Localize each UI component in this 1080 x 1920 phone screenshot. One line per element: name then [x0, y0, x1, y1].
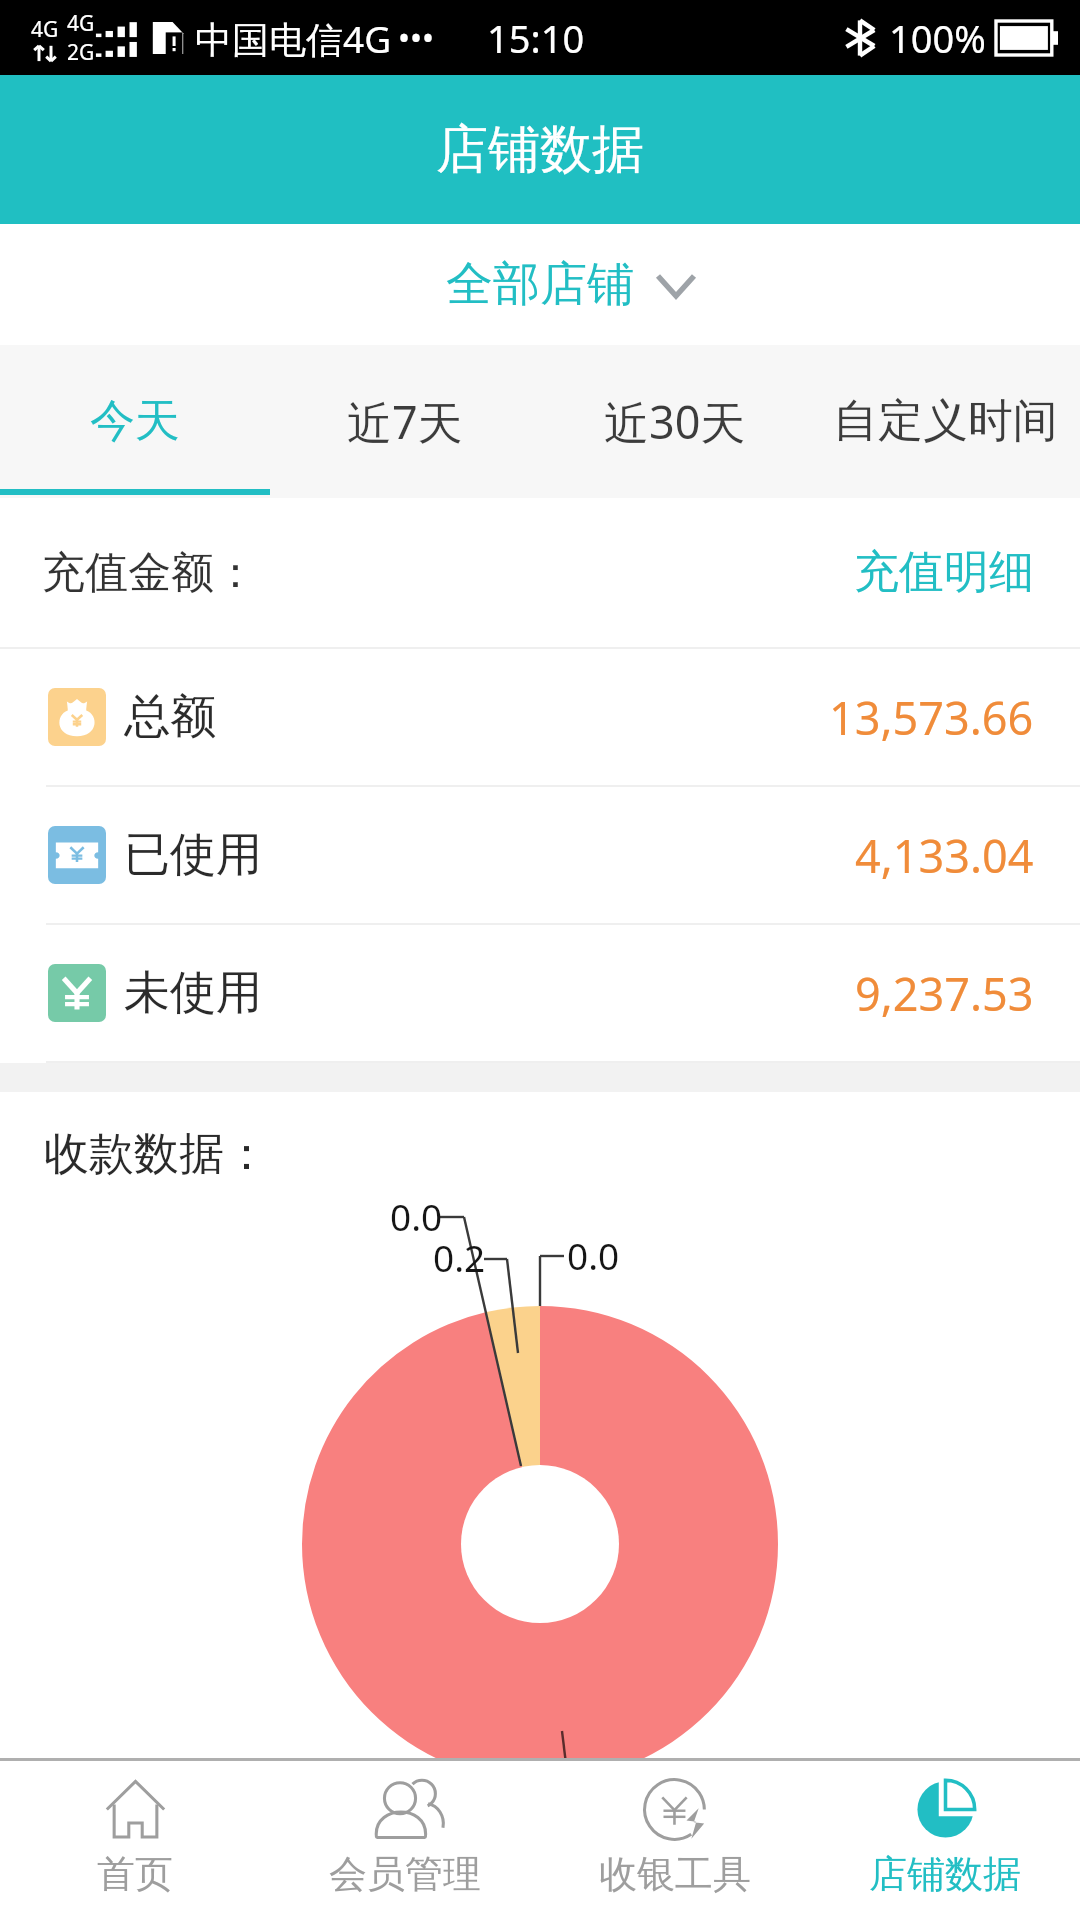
button[interactable]: 近7天 — [270, 345, 540, 498]
staticText: 充值明细 — [854, 544, 1034, 601]
staticText: 已使用 — [124, 826, 262, 884]
button[interactable]: 店铺数据 — [810, 1761, 1080, 1920]
staticText: 收银工具 — [599, 1850, 751, 1898]
staticText: 总额 — [124, 688, 216, 746]
staticText: 0.2 — [433, 1232, 486, 1282]
button[interactable]: 首页 — [0, 1761, 270, 1920]
button[interactable]: 自定义时间 — [810, 345, 1080, 498]
button[interactable]: 充值明细 — [808, 544, 1080, 601]
staticText: 充值金额： — [42, 546, 257, 600]
staticText: 中国电信4G — [195, 13, 392, 64]
staticText: 未使用 — [124, 964, 262, 1022]
staticText: 会员管理 — [329, 1850, 481, 1898]
staticText: 近30天 — [604, 391, 746, 452]
staticText: 全部店铺 — [446, 255, 634, 314]
button[interactable]: 会员管理 — [270, 1761, 540, 1920]
button[interactable]: 近30天 — [540, 345, 810, 498]
staticText: 自定义时间 — [833, 393, 1058, 450]
staticText: 15:10 — [487, 12, 585, 64]
staticText: 100% — [889, 12, 986, 64]
button[interactable]: 未使用 — [0, 925, 1080, 1061]
staticText: 0.0 — [390, 1191, 443, 1241]
button[interactable]: 已使用 — [0, 787, 1080, 923]
staticText: 2G — [67, 38, 95, 67]
staticText: 近7天 — [347, 391, 463, 452]
button[interactable]: 今天 — [0, 345, 270, 498]
staticText: 13,573.66 — [829, 687, 1034, 748]
button[interactable]: 收银工具 — [540, 1761, 810, 1920]
staticText: ••• — [398, 16, 435, 60]
staticText: 收款数据： — [44, 1126, 269, 1183]
staticText: 4G — [67, 9, 95, 38]
staticText: 首页 — [97, 1850, 173, 1898]
staticText: 9,237.53 — [855, 963, 1034, 1024]
staticText: 店铺数据 — [436, 117, 644, 183]
staticText: 4,133.04 — [855, 825, 1034, 886]
staticText: 今天 — [90, 393, 180, 450]
button[interactable]: 全部店铺 — [0, 224, 1080, 345]
staticText: 4G — [31, 15, 59, 44]
staticText: 0.0 — [567, 1230, 620, 1280]
staticText: 店铺数据 — [869, 1850, 1021, 1898]
button[interactable]: 总额 — [0, 649, 1080, 785]
